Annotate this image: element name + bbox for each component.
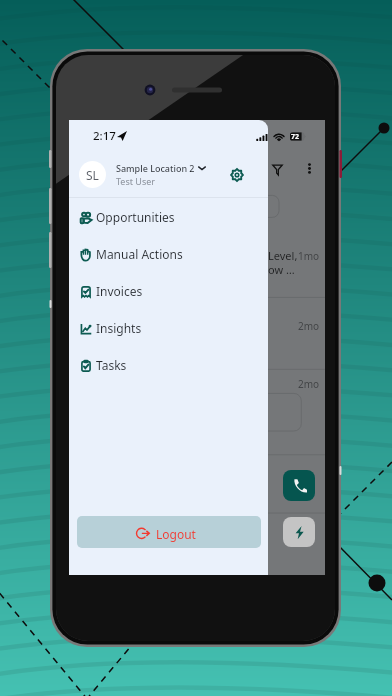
- staticText: SL: [86, 167, 99, 183]
- button[interactable]: Opportunities: [69, 206, 268, 228]
- button[interactable]: Quick action: [283, 517, 315, 547]
- button[interactable]: Invoices: [69, 280, 268, 302]
- button[interactable]: Filter: [267, 159, 287, 179]
- staticText: 2mo: [298, 319, 320, 333]
- button[interactable]: Tasks: [69, 354, 268, 376]
- button[interactable]: More options: [300, 159, 318, 177]
- staticText: Invoices: [96, 283, 143, 299]
- staticText: Insights: [96, 320, 142, 336]
- button[interactable]: Logout: [77, 516, 261, 548]
- staticText: 72: [291, 132, 300, 142]
- staticText: Tasks: [96, 357, 127, 373]
- button[interactable]: Manual Actions: [69, 243, 268, 265]
- button[interactable]: Insights: [69, 317, 268, 339]
- staticText: Opportunities: [96, 209, 175, 225]
- staticText: Logout: [156, 526, 196, 542]
- staticText: 1mo: [298, 249, 320, 263]
- staticText: Test User: [116, 175, 156, 187]
- staticText: Level,: [268, 248, 298, 263]
- staticText: Sample Location 2: [116, 162, 195, 174]
- staticText: 2mo: [298, 377, 320, 391]
- staticText: 2:17: [93, 128, 116, 144]
- button[interactable]: Settings: [227, 165, 247, 185]
- staticText: Manual Actions: [96, 246, 183, 262]
- button[interactable]: SL: [69, 153, 268, 196]
- staticText: ow …: [268, 262, 295, 277]
- button[interactable]: Call: [283, 470, 315, 501]
